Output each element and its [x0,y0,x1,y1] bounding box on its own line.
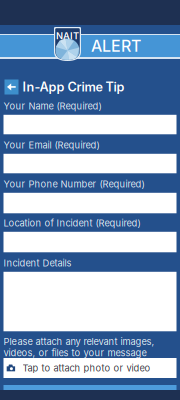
staticText: ALERT [91,36,141,56]
staticText: Your Email (Required) [3,139,99,151]
staticText: Tap to attach photo or video [22,362,150,374]
button[interactable]: Tap to attach photo or video [3,358,176,378]
staticText: NAIT [56,30,79,41]
staticText: Your Name (Required) [3,100,101,112]
staticText: In-App Crime Tip [22,79,124,95]
staticText: Location of Incident (Required) [3,217,140,229]
button[interactable]: Back [4,79,18,94]
staticText: Please attach any relevant images, video… [3,336,154,359]
staticText: Your Phone Number (Required) [3,178,144,190]
staticText: Incident Details [3,257,71,269]
